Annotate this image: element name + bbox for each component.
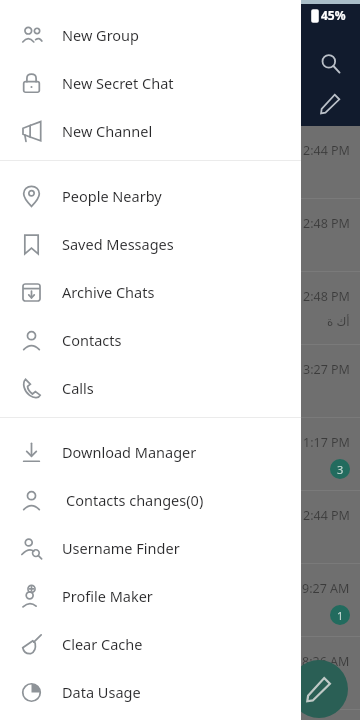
- staticText: 2:44 PM: [303, 507, 350, 524]
- button[interactable]: Contacts: [0, 316, 301, 364]
- button[interactable]: Clear Cache: [0, 620, 301, 668]
- button[interactable]: Contacts changes(0): [0, 476, 301, 524]
- staticText: New Group: [62, 25, 139, 45]
- staticText: 3:27 PM: [303, 361, 350, 378]
- staticText: Contacts changes(0): [66, 490, 204, 510]
- button[interactable]: Archive Chats: [0, 268, 301, 316]
- button[interactable]: Data Usage: [0, 668, 301, 716]
- staticText: 1: [337, 608, 344, 623]
- button[interactable]: New message: [290, 660, 348, 718]
- button[interactable]: New message: [312, 85, 348, 121]
- button[interactable]: New Secret Chat: [0, 59, 301, 107]
- staticText: Saved Messages: [62, 234, 174, 254]
- staticText: Calls: [62, 378, 94, 398]
- button[interactable]: Search: [312, 45, 348, 81]
- staticText: Username Finder: [62, 538, 180, 558]
- staticText: People Nearby: [62, 186, 162, 206]
- button[interactable]: Username Finder: [0, 524, 301, 572]
- staticText: Contacts: [62, 330, 122, 350]
- staticText: 2:48 PM: [303, 288, 350, 305]
- button[interactable]: Saved Messages: [0, 220, 301, 268]
- staticText: أك ة: [327, 313, 350, 329]
- staticText: Clear Cache: [62, 634, 143, 654]
- staticText: New Channel: [62, 121, 153, 141]
- button[interactable]: Calls: [0, 364, 301, 412]
- button[interactable]: People Nearby: [0, 172, 301, 220]
- staticText: 8:36 AM: [302, 653, 350, 670]
- staticText: 2:48 PM: [303, 215, 350, 232]
- staticText: New Secret Chat: [62, 73, 174, 93]
- button[interactable]: New Group: [0, 11, 301, 59]
- staticText: 3: [337, 462, 344, 477]
- staticText: 2:44 PM: [303, 142, 350, 159]
- button[interactable]: Profile Maker: [0, 572, 301, 620]
- staticText: Profile Maker: [62, 586, 153, 606]
- button[interactable]: New Channel: [0, 107, 301, 155]
- staticText: 1:17 PM: [303, 434, 350, 451]
- staticText: Data Usage: [62, 682, 141, 702]
- staticText: Download Manager: [62, 442, 197, 462]
- staticText: 9:27 AM: [302, 580, 350, 597]
- button[interactable]: Download Manager: [0, 428, 301, 476]
- staticText: 45%: [321, 7, 346, 23]
- staticText: Archive Chats: [62, 282, 155, 302]
